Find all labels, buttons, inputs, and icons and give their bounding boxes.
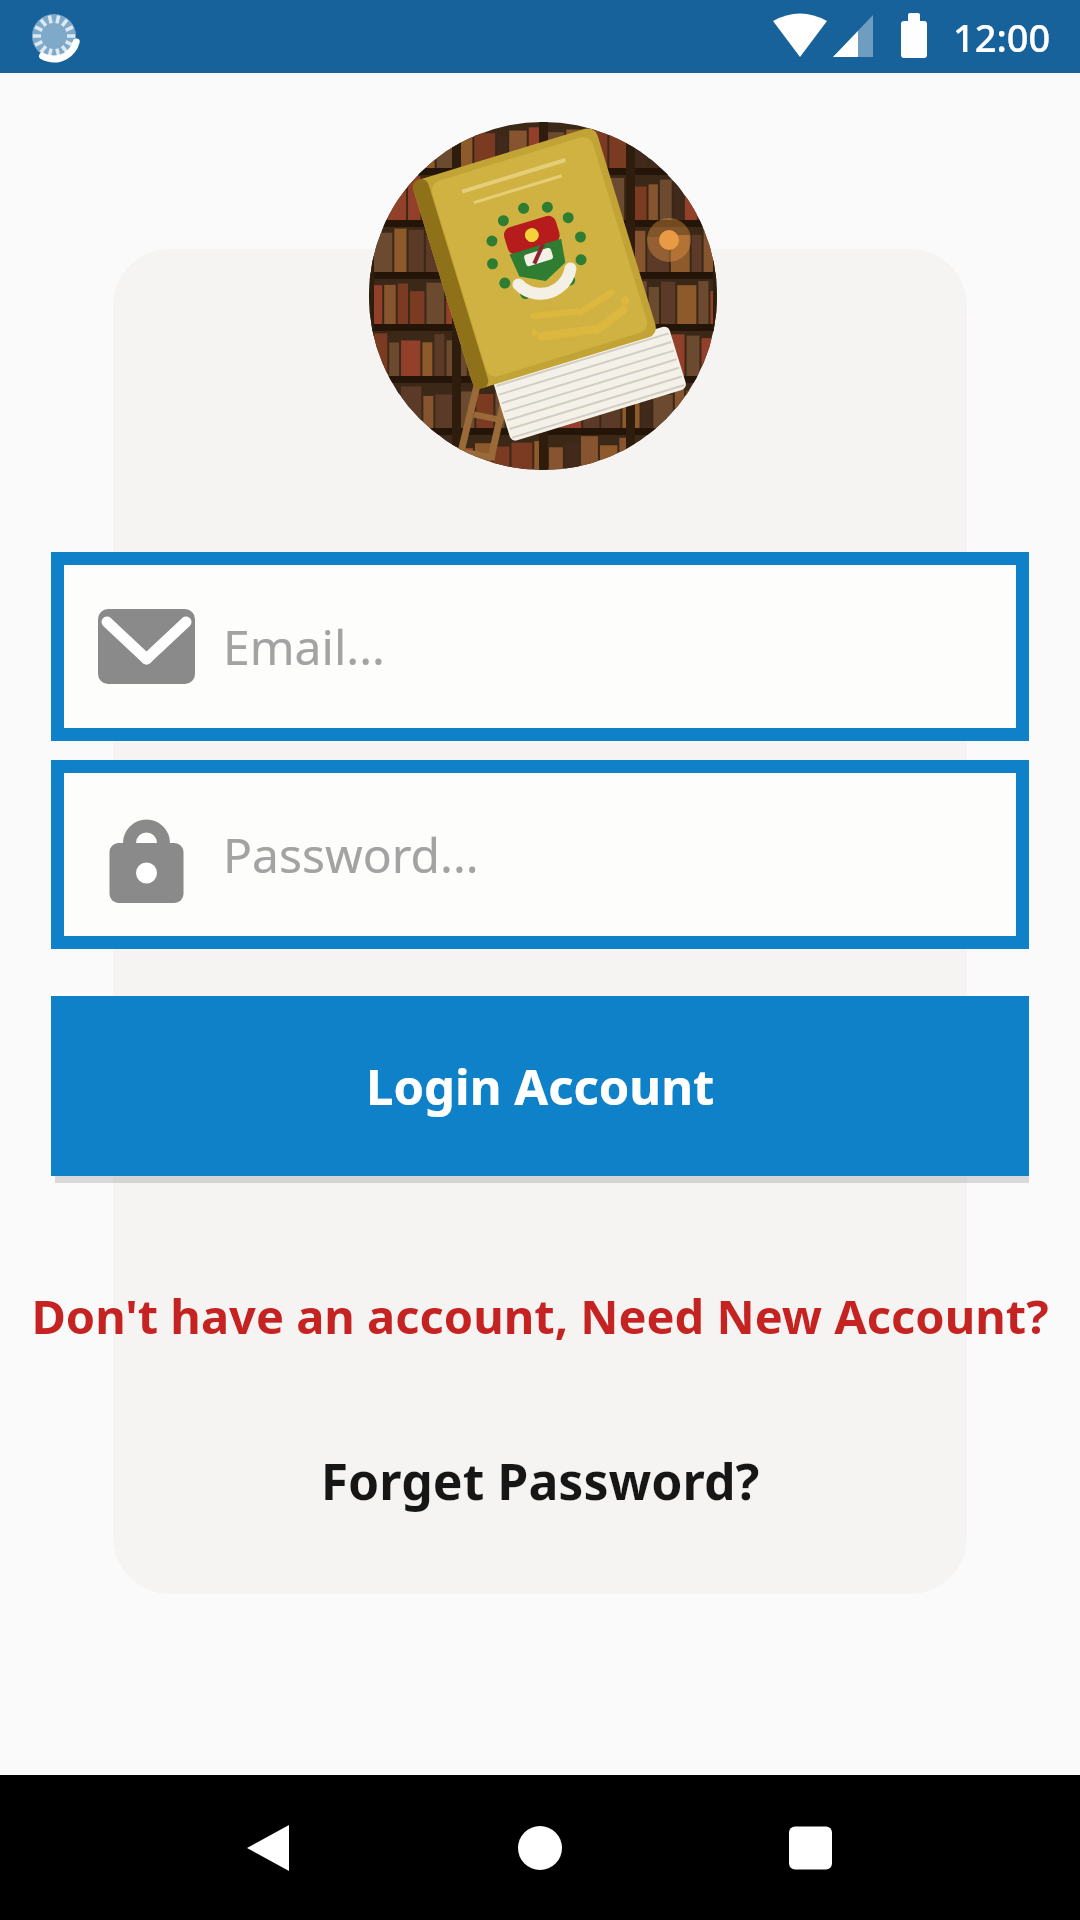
button[interactable]: Password... bbox=[51, 760, 1029, 949]
button[interactable]: Login Account bbox=[51, 996, 1029, 1176]
button[interactable] bbox=[360, 1775, 720, 1920]
button[interactable]: Forget Password? bbox=[0, 1447, 1080, 1515]
staticText: Email... bbox=[223, 614, 385, 679]
staticText: Password... bbox=[223, 822, 479, 887]
staticText: 12:00 bbox=[953, 11, 1051, 63]
button[interactable] bbox=[0, 1775, 360, 1920]
staticText: Login Account bbox=[366, 1053, 715, 1120]
button[interactable] bbox=[720, 1775, 1080, 1920]
button[interactable]: Don't have an account, Need New Account? bbox=[0, 1284, 1080, 1348]
button[interactable]: Email... bbox=[51, 552, 1029, 741]
